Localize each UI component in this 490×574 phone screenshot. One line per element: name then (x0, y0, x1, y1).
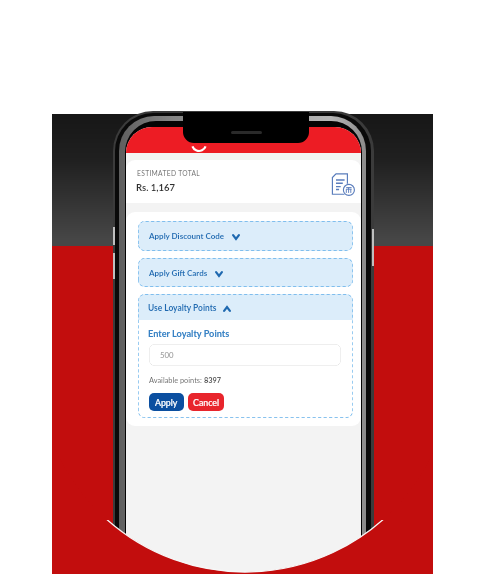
other: Collapse (223, 306, 231, 312)
other: Expand (215, 271, 223, 277)
staticText: Rs. 1,167 (136, 182, 176, 193)
staticText: 8397 (204, 376, 222, 385)
staticText: Use Loyalty Points (148, 303, 217, 313)
staticText: Apply (155, 397, 178, 408)
staticText: Available points: (149, 376, 204, 385)
staticText: ESTIMATED TOTAL (137, 169, 201, 177)
button[interactable]: Apply Gift Cards (138, 258, 353, 287)
button[interactable]: Apply Discount Code (138, 221, 353, 251)
button[interactable]: 500 (149, 344, 341, 366)
other: Expand (232, 234, 240, 240)
staticText: Enter Loyalty Points (148, 328, 230, 339)
button[interactable] (138, 294, 353, 320)
button[interactable]: Cancel (188, 393, 224, 411)
staticText: Apply Gift Cards (149, 268, 208, 278)
button[interactable]: Apply (149, 393, 184, 411)
button[interactable]: View invoice (329, 169, 352, 195)
staticText: Cancel (193, 397, 219, 408)
staticText: 500 (160, 350, 174, 359)
staticText: Apply Discount Code (149, 231, 225, 241)
